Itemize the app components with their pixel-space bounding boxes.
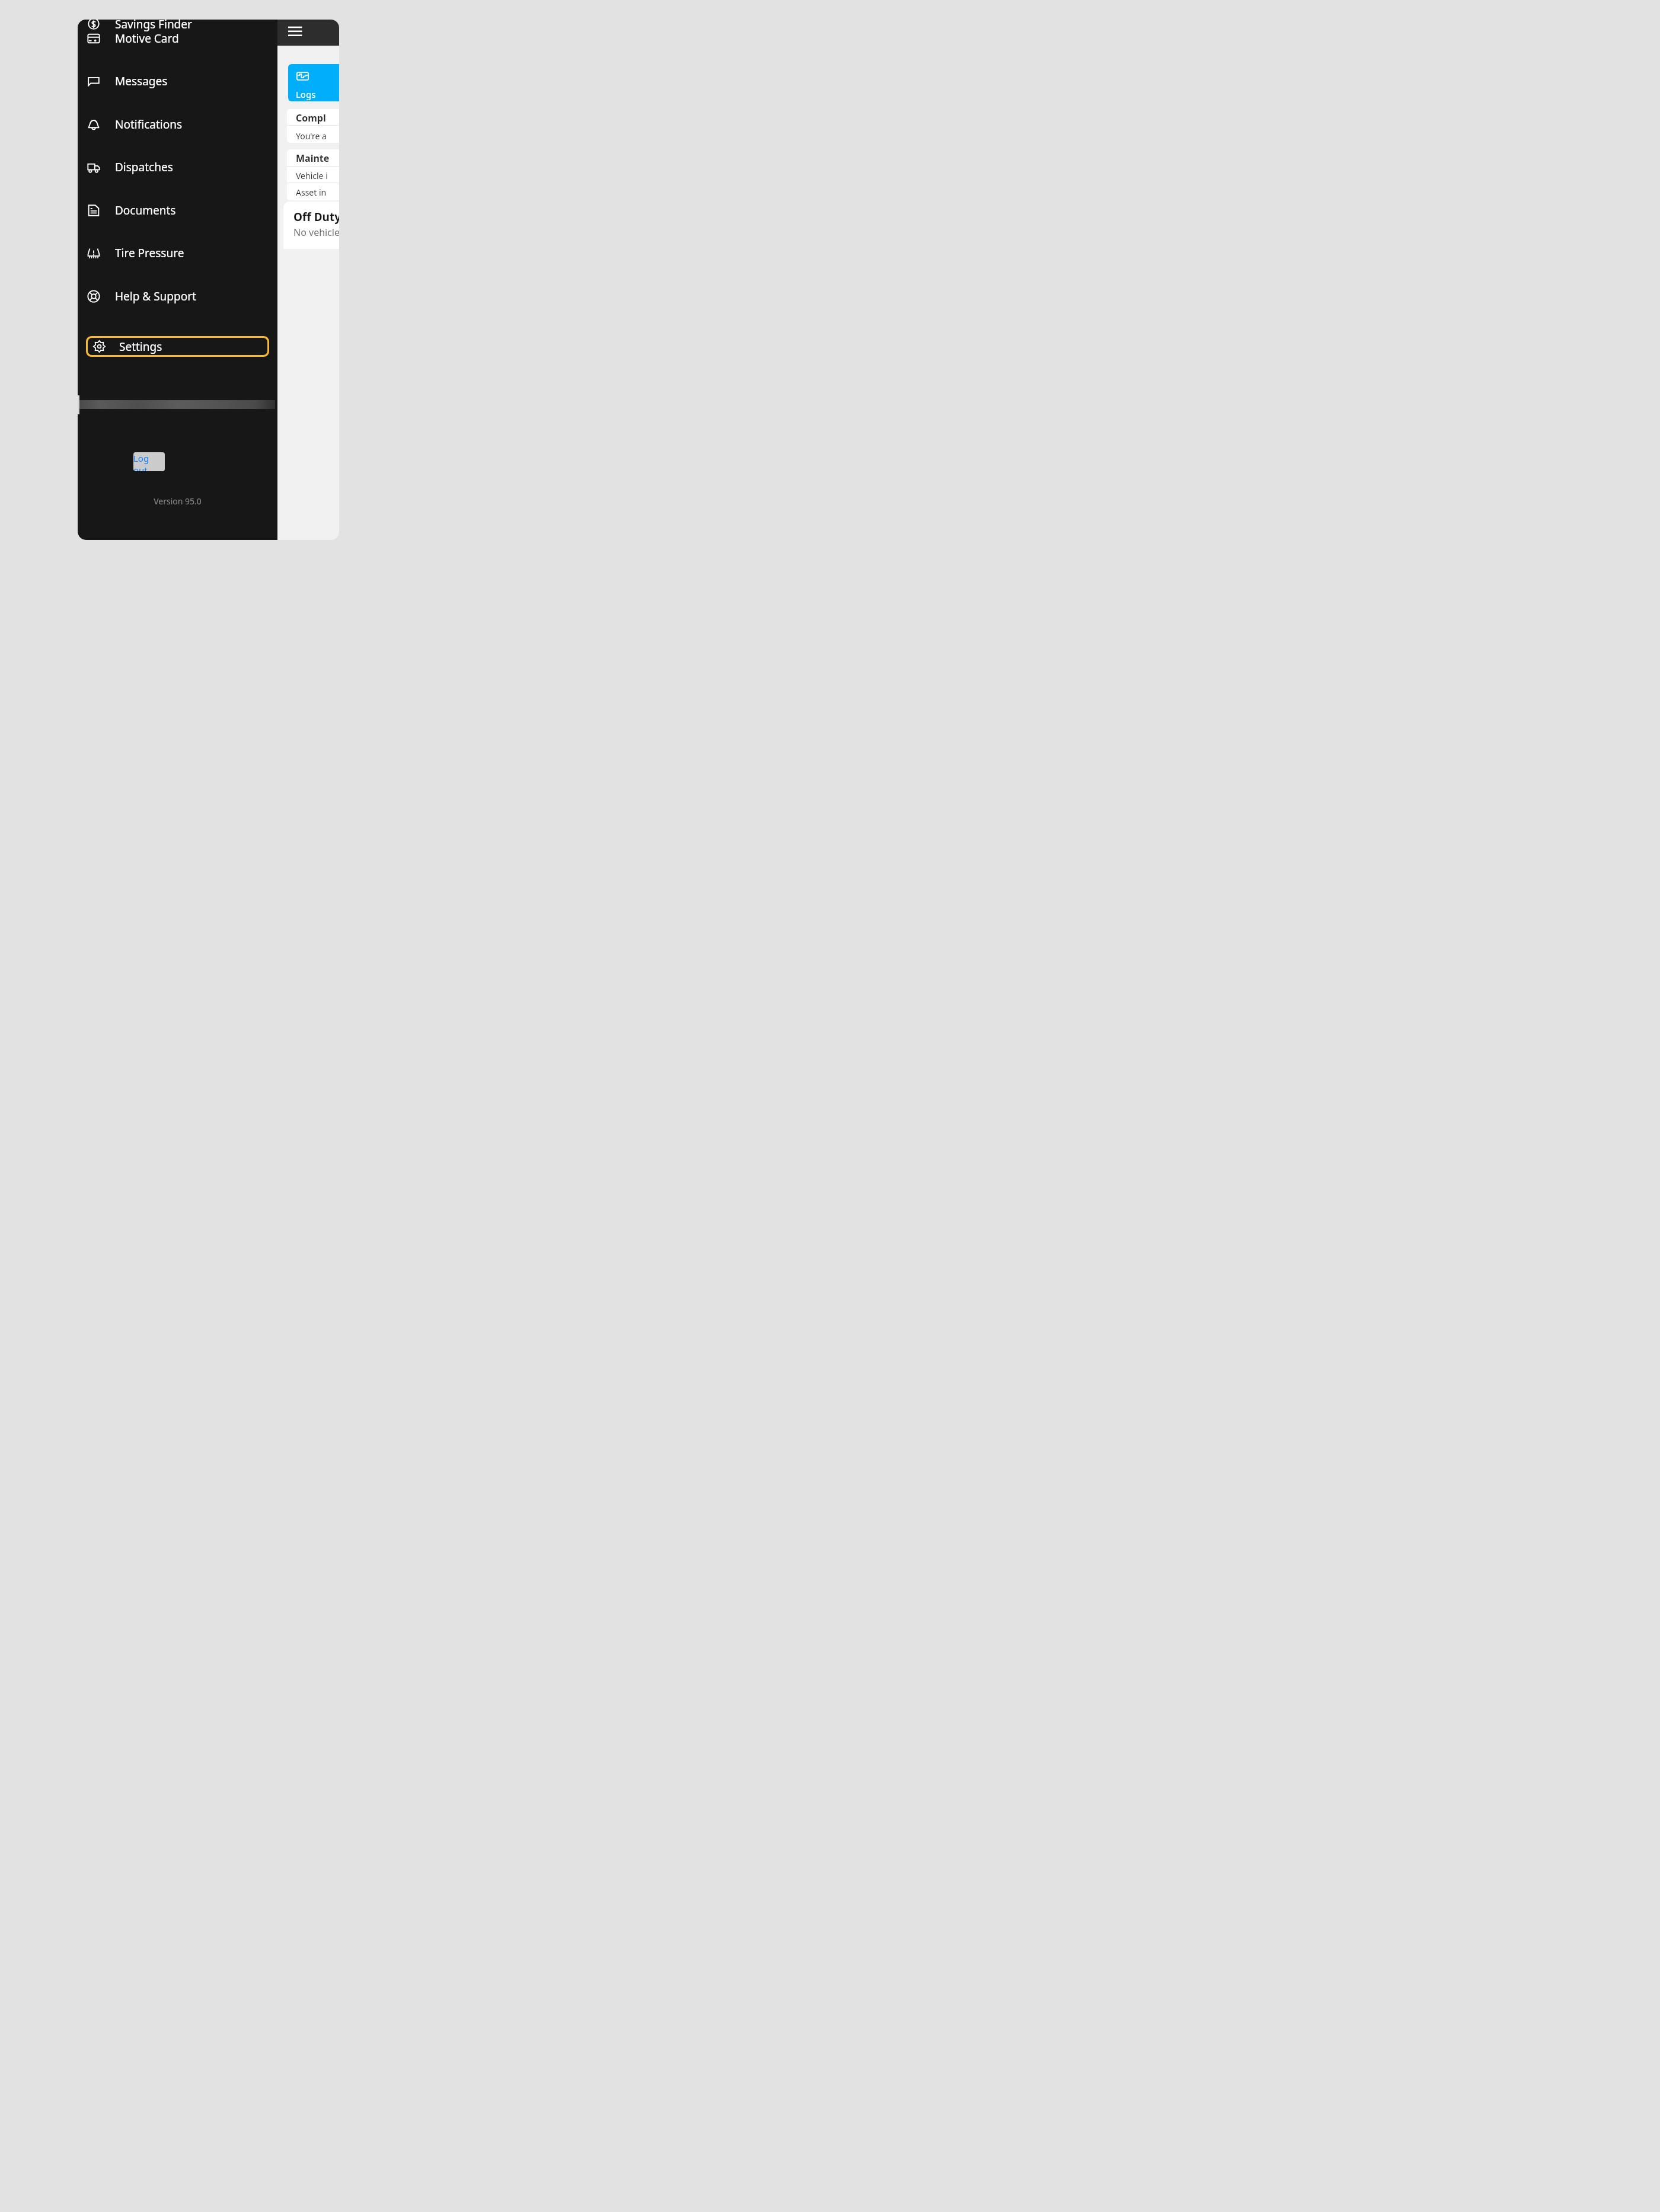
staticText: Asset in <box>296 187 327 198</box>
staticText: Help & Support <box>115 289 196 304</box>
staticText: Messages <box>115 73 168 89</box>
button[interactable]: Mainte <box>287 149 339 200</box>
button[interactable]: Tire Pressure <box>78 239 277 267</box>
button[interactable]: Motive Card <box>78 25 277 52</box>
staticText: Off Duty <box>293 209 339 225</box>
staticText: Compl <box>296 111 326 124</box>
button[interactable]: Log out <box>133 452 165 471</box>
button[interactable]: Help & Support <box>78 283 277 310</box>
staticText: Log out <box>133 452 165 471</box>
staticText: No vehicle <box>293 226 339 239</box>
staticText: Logs <box>296 88 316 100</box>
button[interactable]: Off Duty <box>283 202 339 249</box>
button[interactable]: Open navigation menu <box>288 25 304 40</box>
staticText: You're a <box>296 130 327 142</box>
button[interactable]: Documents <box>78 197 277 224</box>
staticText: Settings <box>119 339 162 354</box>
staticText: Tire Pressure <box>115 245 184 261</box>
staticText: Vehicle i <box>296 170 328 181</box>
staticText: Motive Card <box>115 31 179 46</box>
staticText: Notifications <box>115 117 183 132</box>
button[interactable]: Compl <box>287 109 339 143</box>
staticText: Dispatches <box>115 159 173 175</box>
button[interactable]: Dispatches <box>78 154 277 181</box>
staticText: Mainte <box>296 152 330 165</box>
staticText: Savings Finder <box>115 20 192 32</box>
button[interactable]: Savings Finder <box>78 20 277 38</box>
staticText: Version 95.0 <box>78 496 277 507</box>
button[interactable]: Settings <box>88 338 267 355</box>
button[interactable]: Logs <box>288 64 339 101</box>
button[interactable]: Notifications <box>78 111 277 138</box>
button[interactable]: Messages <box>78 68 277 95</box>
staticText: Documents <box>115 203 176 218</box>
